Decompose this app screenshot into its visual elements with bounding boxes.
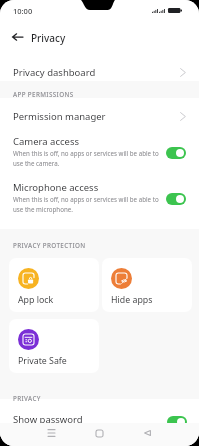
button[interactable]: Show password <box>0 407 199 431</box>
staticText: 10:00 <box>13 6 33 16</box>
staticText: Camera access <box>13 135 80 148</box>
staticText: Private Safe <box>18 355 67 367</box>
button[interactable]: Microphone access <box>0 176 199 218</box>
button[interactable]: Private Safe <box>9 319 99 373</box>
button[interactable]: Camera access <box>0 130 199 172</box>
staticText: When this is off, no apps or services wi… <box>13 195 161 214</box>
button[interactable]: Privacy dashboard <box>0 60 199 84</box>
staticText: Privacy dashboard <box>13 66 96 79</box>
button[interactable]: Back <box>6 26 28 48</box>
button[interactable]: App lock <box>9 258 99 312</box>
button[interactable]: Toggle on <box>167 416 187 428</box>
staticText: Privacy <box>31 31 66 45</box>
button[interactable]: Recent apps <box>40 422 62 444</box>
staticText: APP PERMISSIONS <box>13 90 74 99</box>
staticText: Show password <box>13 413 83 426</box>
staticText: When this is off, no apps or services wi… <box>13 149 161 168</box>
button[interactable]: Home <box>88 422 110 444</box>
button[interactable]: Hide apps <box>102 258 192 312</box>
staticText: Hide apps <box>111 294 153 306</box>
button[interactable]: Permission manager <box>0 104 199 128</box>
button[interactable]: Toggle on <box>166 147 186 159</box>
staticText: Permission manager <box>13 110 106 123</box>
button[interactable]: Toggle on <box>166 193 186 205</box>
button[interactable]: Back <box>136 422 158 444</box>
staticText: App lock <box>18 294 54 306</box>
staticText: PRIVACY PROTECTION <box>13 241 86 250</box>
staticText: PRIVACY <box>13 394 41 403</box>
staticText: Microphone access <box>13 181 99 194</box>
